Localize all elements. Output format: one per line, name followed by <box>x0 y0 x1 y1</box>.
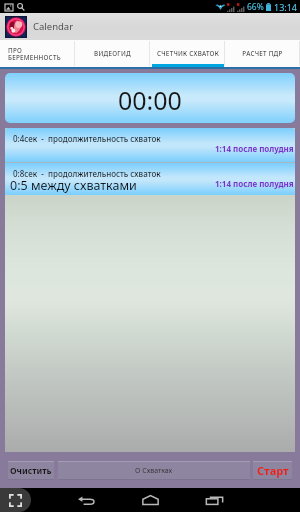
button[interactable]: Старт <box>253 461 292 480</box>
staticText: ВИДЕОГИД <box>94 49 131 58</box>
staticText: 00:00 <box>118 83 182 117</box>
staticText: 1:14 после полудня <box>215 178 294 189</box>
staticText: 1:14 после полудня <box>215 143 294 154</box>
staticText: 0:5 между схватками <box>10 177 137 194</box>
button[interactable]: О Схватках <box>58 461 250 480</box>
button[interactable]: Exit fullscreen <box>0 488 31 512</box>
staticText: Очистить <box>10 465 52 477</box>
staticText: СЧЕТЧИК СХВАТОК <box>157 49 219 58</box>
button[interactable]: Очистить <box>8 461 54 480</box>
staticText: Старт <box>257 463 289 478</box>
button[interactable]: РАСЧЕТ ПДР <box>225 40 300 67</box>
staticText: ПРО БЕРЕМЕННОСТЬ <box>8 46 61 62</box>
button[interactable]: Home <box>137 488 164 512</box>
button[interactable]: ВИДЕОГИД <box>75 40 150 67</box>
button[interactable]: 0:8сек - продолжительность схваток <box>5 163 295 195</box>
button[interactable]: Recents <box>201 488 228 512</box>
button[interactable]: ПРО БЕРЕМЕННОСТЬ <box>0 40 75 67</box>
staticText: 0:4сек - продолжительность схваток <box>13 133 161 144</box>
button[interactable]: 0:4сек - продолжительность схваток <box>5 128 295 162</box>
button[interactable]: СЧЕТЧИК СХВАТОК <box>150 40 225 67</box>
staticText: 0:8сек - продолжительность схваток <box>13 168 161 179</box>
staticText: 66% <box>247 1 264 13</box>
staticText: РАСЧЕТ ПДР <box>242 49 283 58</box>
button[interactable]: Back <box>73 488 100 512</box>
staticText: 13:14 <box>274 1 298 13</box>
staticText: Calendar <box>33 20 74 33</box>
staticText: О Схватках <box>135 466 173 476</box>
